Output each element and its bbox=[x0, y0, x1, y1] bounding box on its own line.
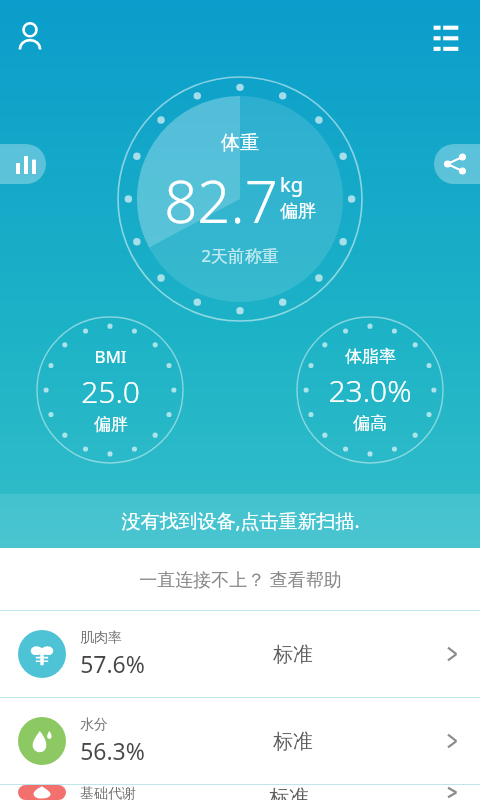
staticText: 没有找到设备,点击重新扫描. bbox=[121, 508, 360, 534]
button[interactable]: 一直连接不上？ 查看帮助 bbox=[0, 548, 480, 610]
button[interactable]: Menu bbox=[424, 12, 472, 60]
staticText: 标准 bbox=[273, 729, 313, 754]
button[interactable]: BMI bbox=[36, 316, 184, 464]
staticText: 水分 bbox=[80, 716, 108, 734]
button[interactable]: Share bbox=[434, 144, 480, 184]
button[interactable]: 体重 bbox=[117, 76, 363, 322]
staticText: 56.3% bbox=[80, 735, 145, 766]
button[interactable]: 体脂率 bbox=[296, 316, 444, 464]
staticText: 标准 bbox=[269, 785, 309, 800]
staticText: 标准 bbox=[273, 642, 313, 667]
staticText: 体脂率 bbox=[345, 346, 396, 367]
staticText: 82.7 bbox=[164, 161, 278, 240]
staticText: 57.6% bbox=[80, 648, 145, 679]
staticText: BMI bbox=[94, 345, 127, 368]
staticText: 基础代谢 bbox=[80, 785, 136, 800]
staticText: 肌肉率 bbox=[80, 629, 122, 647]
staticText: 偏胖 bbox=[94, 414, 128, 435]
staticText: 2天前称重 bbox=[201, 244, 279, 267]
staticText: 体重 bbox=[221, 131, 259, 155]
staticText: 偏高 bbox=[353, 413, 387, 434]
staticText: 一直连接不上？ 查看帮助 bbox=[139, 567, 342, 592]
button[interactable]: 没有找到设备,点击重新扫描. bbox=[0, 494, 480, 548]
staticText: 25.0 bbox=[81, 371, 140, 412]
button[interactable]: 水分 bbox=[0, 698, 480, 784]
button[interactable]: 肌肉率 bbox=[0, 611, 480, 697]
button[interactable]: Profile bbox=[6, 12, 54, 60]
staticText: kg bbox=[280, 171, 303, 198]
button[interactable]: Statistics bbox=[0, 144, 46, 184]
button[interactable]: 基础代谢 bbox=[0, 785, 480, 800]
staticText: 偏胖 bbox=[280, 200, 316, 223]
staticText: 23.0% bbox=[328, 370, 412, 411]
